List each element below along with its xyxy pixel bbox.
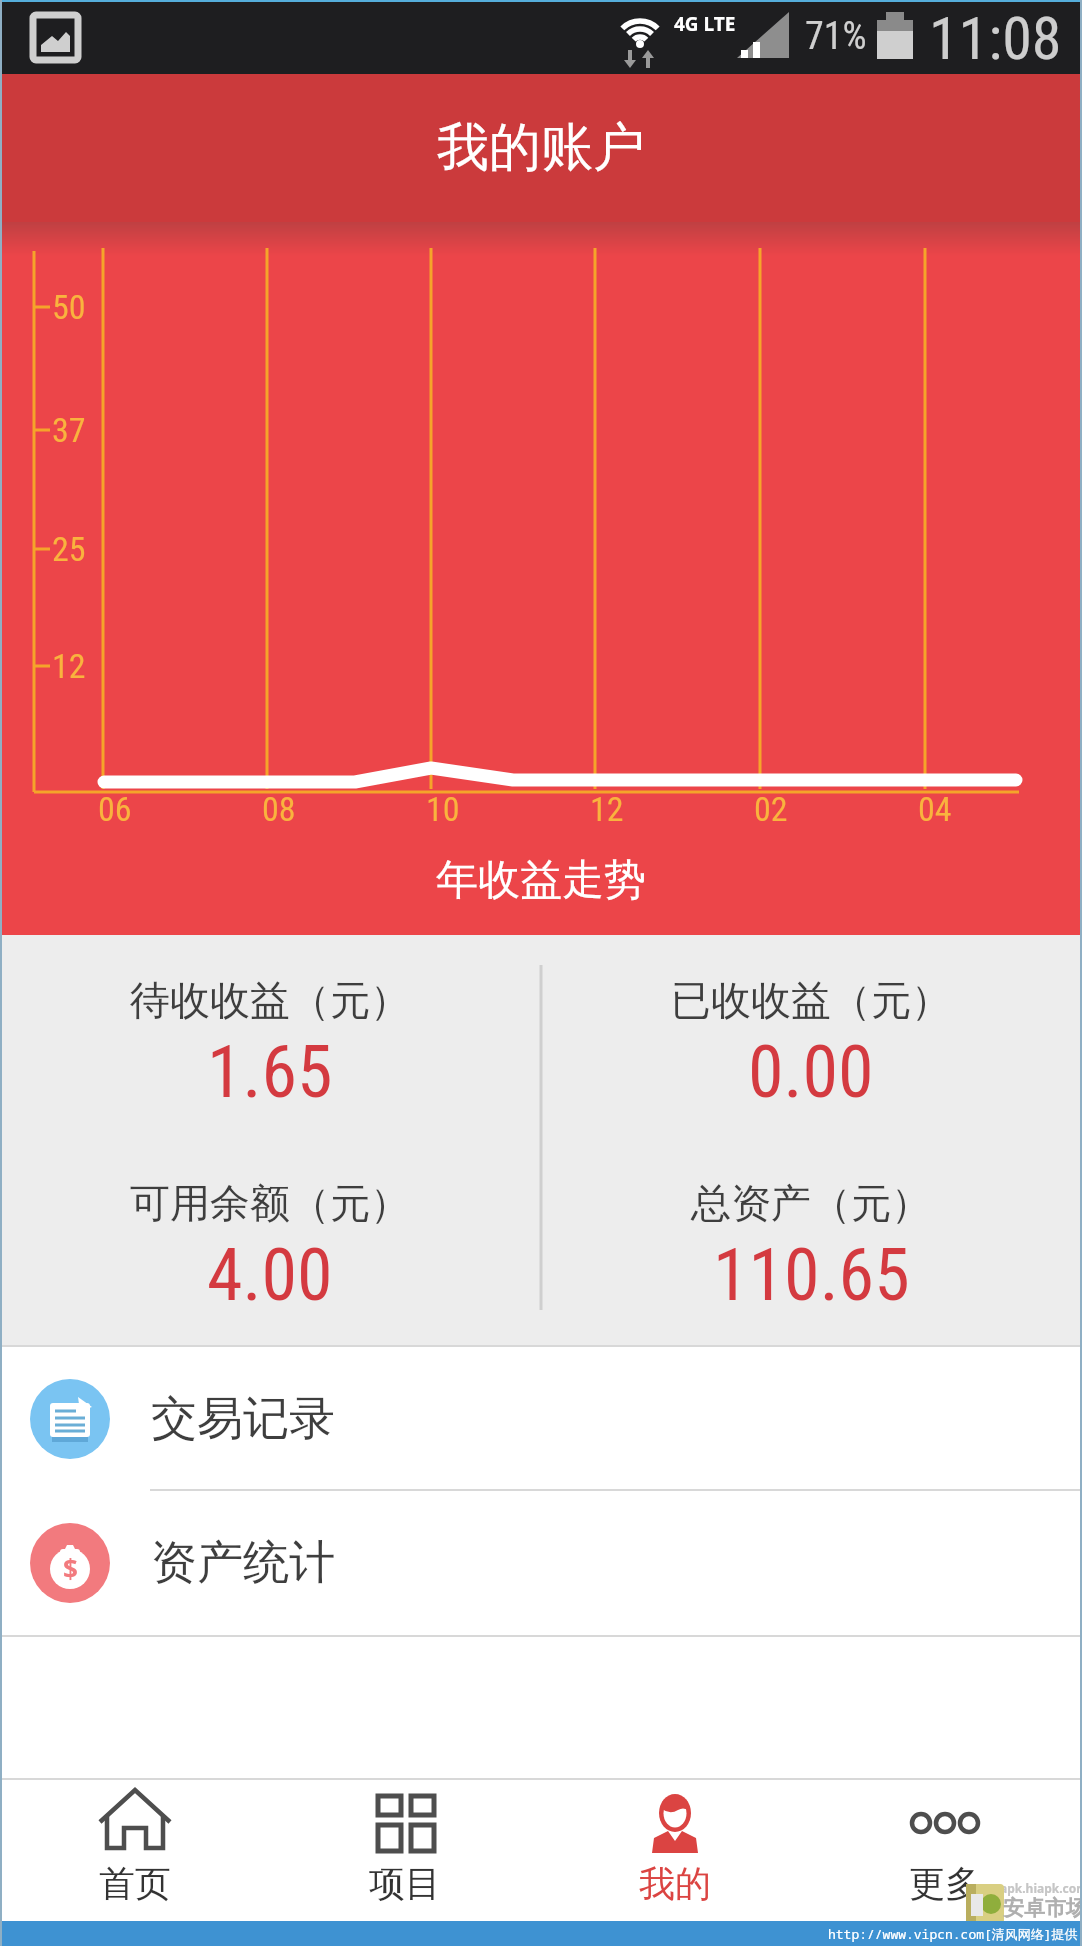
button[interactable]: 项目: [270, 1778, 540, 1921]
button[interactable]: 交易记录: [0, 1348, 1082, 1490]
button[interactable]: 首页: [0, 1778, 270, 1921]
staticText: 总资产（元）: [691, 1178, 931, 1228]
staticText: 110.65: [713, 1233, 910, 1313]
staticText: 08: [262, 789, 296, 829]
staticText: 12: [52, 646, 86, 686]
staticText: 4G LTE: [674, 11, 736, 37]
staticText: 可用余额（元）: [130, 1178, 410, 1228]
staticText: 已收收益（元）: [671, 975, 951, 1025]
staticText: 25: [52, 529, 86, 569]
staticText: 10: [426, 789, 460, 829]
staticText: 50: [52, 287, 86, 327]
staticText: 项目: [369, 1861, 441, 1906]
staticText: 1.65: [207, 1030, 333, 1110]
staticText: 资产统计: [151, 1534, 335, 1592]
button[interactable]: 更多: [810, 1778, 1082, 1921]
staticText: 更多: [909, 1861, 981, 1906]
staticText: 交易记录: [151, 1390, 335, 1448]
button[interactable]: 我的: [540, 1778, 810, 1921]
staticText: 我的账户: [437, 115, 645, 181]
staticText: apk.hiapk.com: [1000, 1880, 1082, 1896]
staticText: 年收益走势: [436, 854, 646, 907]
staticText: http://www.vipcn.com[清风网络]提供: [828, 1925, 1078, 1943]
button[interactable]: $: [0, 1492, 1082, 1634]
staticText: 4.00: [207, 1233, 333, 1313]
staticText: 06: [98, 789, 132, 829]
staticText: 0.00: [748, 1030, 874, 1110]
staticText: 11:08: [929, 3, 1062, 67]
staticText: 02: [754, 789, 788, 829]
staticText: 37: [52, 410, 86, 450]
staticText: 待收收益（元）: [130, 975, 410, 1025]
staticText: 71%: [805, 14, 867, 59]
staticText: 安卓市场: [1003, 1895, 1082, 1921]
staticText: 12: [590, 789, 624, 829]
staticText: $: [63, 1551, 78, 1586]
staticText: 我的: [639, 1861, 711, 1906]
staticText: 04: [918, 789, 952, 829]
staticText: 首页: [99, 1861, 171, 1906]
